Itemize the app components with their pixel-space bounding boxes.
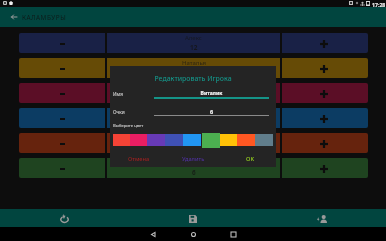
staticText: 6: [154, 108, 269, 116]
staticText: Ирина: [184, 109, 203, 117]
staticText: 6: [192, 168, 196, 177]
staticText: КАЛАМБУРЫ: [22, 13, 67, 22]
button[interactable]: Удалить: [173, 152, 214, 165]
staticText: Алекс: [185, 34, 202, 42]
staticText: Удалить: [182, 155, 205, 163]
button[interactable]: Виталик: [107, 158, 280, 178]
staticText: Наталья: [182, 59, 206, 67]
button[interactable]: Ирина: [107, 108, 280, 128]
button[interactable]: Increase score: [282, 108, 368, 128]
staticText: OK: [246, 155, 254, 163]
button[interactable]: OK: [229, 152, 270, 165]
button[interactable]: Павел: [107, 133, 280, 153]
button[interactable]: Add player: [257, 209, 386, 228]
button[interactable]: Back: [6, 7, 22, 27]
staticText: 7: [192, 93, 196, 102]
staticText: Имя: [113, 91, 123, 97]
button[interactable]: Отмена: [118, 152, 159, 165]
staticText: 12: [190, 43, 198, 52]
button[interactable]: Increase score: [282, 58, 368, 78]
button[interactable]: Decrease score: [19, 158, 105, 178]
button[interactable]: Colour 6: [201, 134, 219, 146]
button[interactable]: Decrease score: [19, 83, 105, 103]
button[interactable]: Decrease score: [19, 108, 105, 128]
staticText: 17:28: [372, 1, 386, 8]
staticText: Виталик: [154, 90, 269, 97]
button[interactable]: Recent apps: [213, 227, 253, 241]
staticText: Редактировать Игрока: [110, 74, 276, 83]
button[interactable]: Сергей: [107, 83, 280, 103]
button[interactable]: Наталья: [107, 58, 280, 78]
button[interactable]: Home: [173, 227, 213, 241]
button[interactable]: Reset scores: [0, 209, 128, 228]
button[interactable]: Decrease score: [19, 33, 105, 53]
staticText: Виталик: [181, 159, 206, 167]
button[interactable]: Colour 7: [219, 134, 237, 146]
button[interactable]: Increase score: [282, 33, 368, 53]
button[interactable]: Increase score: [282, 133, 368, 153]
staticText: Отмена: [128, 155, 150, 163]
staticText: Павел: [185, 134, 203, 142]
button[interactable]: Increase score: [282, 83, 368, 103]
button[interactable]: Increase score: [282, 158, 368, 178]
button[interactable]: Decrease score: [19, 133, 105, 153]
button[interactable]: Back: [133, 227, 173, 241]
button[interactable]: Save: [128, 209, 257, 228]
staticText: Сергей: [183, 84, 204, 92]
staticText: 4: [192, 143, 196, 152]
staticText: Выберите цвет: [113, 123, 144, 129]
staticText: Очки: [113, 109, 125, 115]
button[interactable]: Decrease score: [19, 58, 105, 78]
